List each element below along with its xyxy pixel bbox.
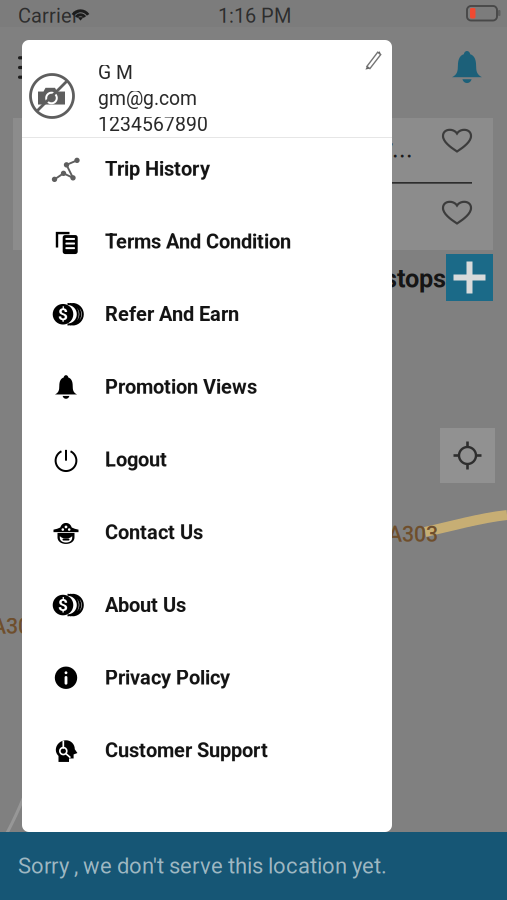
- staticText: Contact Us: [105, 521, 203, 544]
- button[interactable]: Contact Us: [22, 496, 392, 569]
- button[interactable]: Trip History: [22, 132, 392, 205]
- staticText: G M: [98, 61, 133, 84]
- staticText: A303: [388, 522, 438, 547]
- staticText: y...: [381, 134, 413, 164]
- staticText: A30: [0, 614, 30, 639]
- staticText: About Us: [105, 593, 186, 617]
- staticText: stops: [384, 264, 446, 294]
- staticText: Customer Support: [105, 739, 268, 762]
- button[interactable]: $: [22, 569, 392, 641]
- button[interactable]: Customer Support: [22, 714, 392, 787]
- staticText: gm@g.com: [98, 87, 197, 110]
- staticText: Logout: [105, 448, 167, 471]
- staticText: Trip History: [105, 157, 210, 180]
- staticText: $: [58, 595, 68, 615]
- staticText: 1:16 PM: [218, 4, 291, 28]
- button[interactable]: Notifications: [448, 48, 486, 86]
- staticText: Promotion Views: [105, 375, 257, 399]
- button[interactable]: Logout: [22, 423, 392, 496]
- staticText: Refer And Earn: [105, 302, 239, 326]
- button[interactable]: My location: [440, 428, 495, 483]
- staticText: $: [58, 304, 68, 324]
- button[interactable]: Edit profile: [356, 44, 390, 76]
- staticText: Terms And Condition: [105, 230, 291, 253]
- button[interactable]: Terms And Condition: [22, 205, 392, 278]
- button[interactable]: Privacy Policy: [22, 641, 392, 714]
- button[interactable]: Menu: [18, 56, 42, 79]
- staticText: Sorry , we don't serve this location yet…: [18, 853, 387, 879]
- button[interactable]: Add stop: [446, 254, 493, 301]
- staticText: Privacy Policy: [105, 666, 230, 689]
- staticText: Carrier: [18, 4, 79, 28]
- button[interactable]: $: [22, 278, 392, 351]
- button[interactable]: Promotion Views: [22, 351, 392, 423]
- staticText: 1234567890: [98, 113, 208, 136]
